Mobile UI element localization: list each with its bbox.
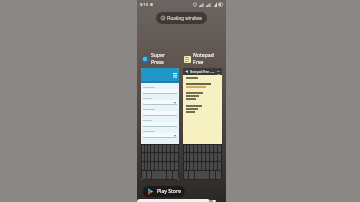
- staticText: Notepad Free: [190, 70, 210, 74]
- button[interactable]: Notepad Free: [183, 52, 222, 180]
- staticText: Edit: [210, 70, 215, 73]
- staticText: Field label: [143, 85, 155, 88]
- staticText: Save: [217, 69, 220, 75]
- staticText: Floating window: [167, 15, 202, 21]
- button[interactable]: Key: [187, 153, 189, 161]
- button[interactable]: Key: [184, 162, 186, 170]
- button[interactable]: Super Press: [137, 199, 210, 202]
- button[interactable]: Key: [142, 145, 144, 152]
- staticText: Field label: [143, 107, 155, 110]
- button[interactable]: Key: [142, 162, 144, 170]
- staticText: 9:15: [140, 2, 148, 7]
- button[interactable]: Key: [184, 145, 186, 152]
- button[interactable]: Floating window: [156, 12, 207, 24]
- button[interactable]: Key: [184, 153, 186, 161]
- button[interactable]: Key: [148, 145, 150, 152]
- button[interactable]: Play Store: [143, 186, 185, 197]
- button[interactable]: Super Press: [141, 52, 179, 180]
- button[interactable]: Key: [142, 153, 144, 161]
- button[interactable]: Close: [206, 200, 216, 202]
- staticText: Section: [143, 96, 152, 99]
- button[interactable]: Key: [148, 153, 150, 161]
- button[interactable]: Key: [145, 153, 147, 161]
- button[interactable]: Key: [145, 145, 147, 152]
- button[interactable]: Key: [145, 162, 147, 170]
- button[interactable]: Key: [187, 162, 189, 170]
- staticText: Super Press: [151, 52, 179, 66]
- staticText: Notepad Free: [193, 52, 222, 66]
- staticText: Field label: [143, 129, 155, 132]
- staticText: Section: [143, 118, 152, 121]
- button[interactable]: Key: [187, 145, 189, 152]
- staticText: Play Store: [157, 188, 181, 195]
- button[interactable]: Key: [148, 162, 150, 170]
